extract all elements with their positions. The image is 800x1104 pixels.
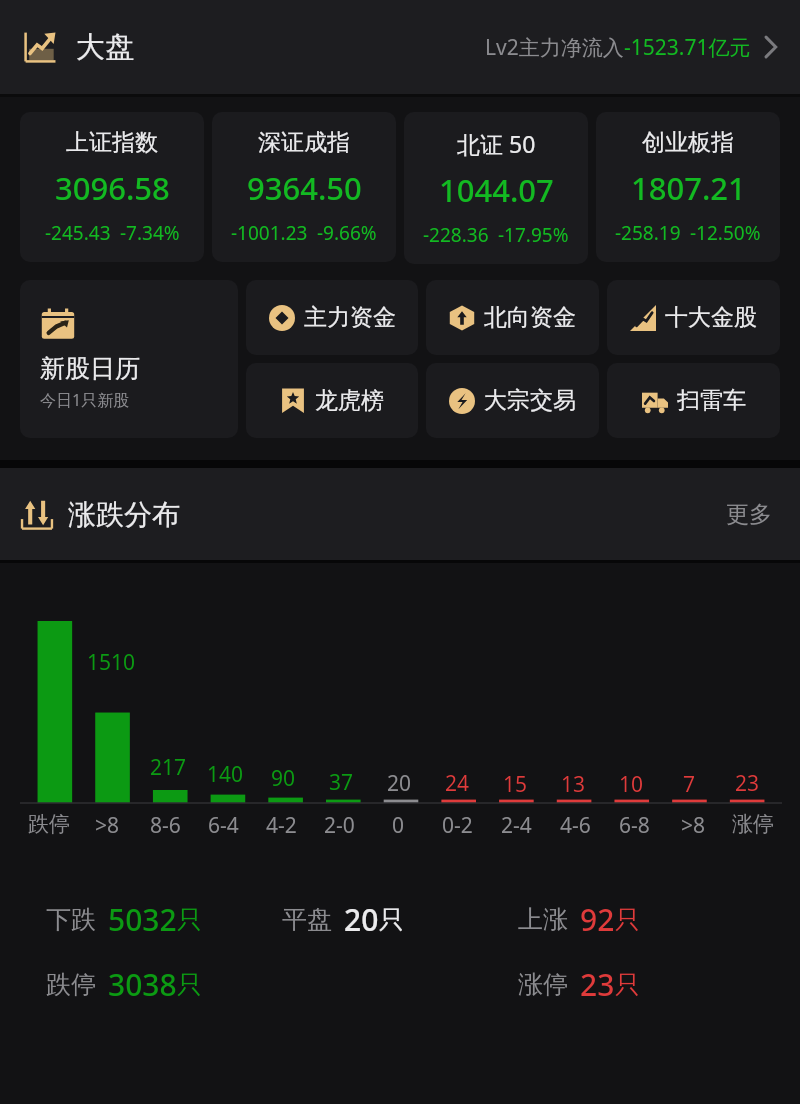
button[interactable]: 更多 bbox=[718, 492, 780, 537]
staticText: -1523.71亿元 bbox=[624, 33, 751, 62]
button[interactable]: Top ten gold stocks bbox=[607, 280, 780, 355]
staticText: 龙虎榜 bbox=[315, 386, 384, 415]
staticText: 平盘 bbox=[282, 904, 332, 935]
staticText: 涨停 bbox=[732, 811, 774, 837]
other: Northbound funds bbox=[449, 305, 475, 331]
staticText: -228.36 bbox=[423, 222, 489, 248]
staticText: 217 bbox=[150, 753, 187, 782]
other: Mine sweeper truck bbox=[642, 388, 668, 414]
button[interactable]: 创业板指 bbox=[596, 112, 780, 262]
staticText: 5032 bbox=[108, 899, 177, 940]
staticText: 大宗交易 bbox=[484, 386, 576, 415]
button[interactable]: 深证成指 bbox=[212, 112, 396, 262]
staticText: 更多 bbox=[726, 500, 772, 529]
staticText: 涨停 bbox=[518, 969, 568, 1000]
staticText: 0-2 bbox=[442, 811, 473, 840]
button[interactable]: Northbound funds bbox=[426, 280, 599, 355]
staticText: 7 bbox=[683, 770, 696, 799]
staticText: 上涨 bbox=[518, 904, 568, 935]
staticText: 140 bbox=[207, 760, 244, 789]
staticText: 20 bbox=[387, 769, 412, 798]
staticText: >8 bbox=[95, 811, 120, 840]
button[interactable]: Main funds bbox=[246, 280, 418, 355]
button[interactable]: Dragon tiger list bbox=[246, 363, 418, 438]
staticText: >8 bbox=[681, 811, 706, 840]
staticText: 4-2 bbox=[266, 811, 297, 840]
staticText: 15 bbox=[503, 770, 528, 799]
staticText: 1807.21 bbox=[631, 167, 746, 209]
staticText: -1001.23 bbox=[231, 220, 308, 246]
staticText: 3038 bbox=[108, 964, 177, 1005]
staticText: 92 bbox=[580, 899, 615, 940]
staticText: 20 bbox=[344, 899, 379, 940]
staticText: 23 bbox=[580, 964, 615, 1005]
staticText: 只 bbox=[379, 904, 404, 935]
button[interactable]: Market bbox=[0, 0, 800, 94]
staticText: 4-6 bbox=[560, 811, 591, 840]
staticText: -12.50% bbox=[690, 220, 761, 246]
button[interactable]: Up down distribution bbox=[20, 491, 180, 538]
staticText: 13 bbox=[561, 770, 586, 799]
staticText: 2-4 bbox=[501, 811, 532, 840]
staticText: 下跌 bbox=[46, 904, 96, 935]
staticText: 涨跌分布 bbox=[68, 497, 180, 532]
staticText: -17.95% bbox=[498, 222, 569, 248]
button[interactable]: Block trades bbox=[426, 363, 599, 438]
staticText: 上证指数 bbox=[66, 128, 158, 157]
staticText: -9.66% bbox=[317, 220, 377, 246]
other: Dragon tiger list bbox=[280, 388, 306, 414]
staticText: 大盘 bbox=[76, 29, 134, 66]
staticText: Lv2主力净流入 bbox=[485, 33, 624, 62]
staticText: 只 bbox=[615, 969, 640, 1000]
other: More bbox=[763, 34, 778, 60]
other: Market bbox=[22, 29, 58, 65]
staticText: 新股日历 bbox=[40, 353, 140, 384]
staticText: 37 bbox=[329, 768, 354, 797]
staticText: 1044.07 bbox=[439, 169, 554, 211]
button[interactable]: New stock calendar bbox=[20, 280, 238, 438]
staticText: -245.43 bbox=[45, 220, 111, 246]
staticText: 23 bbox=[735, 769, 760, 798]
staticText: 24 bbox=[445, 769, 470, 798]
staticText: 6-8 bbox=[619, 811, 650, 840]
other: Block trades bbox=[449, 388, 475, 414]
other: New stock calendar bbox=[40, 307, 76, 343]
button[interactable]: Mine sweeper truck bbox=[607, 363, 780, 438]
staticText: 2-0 bbox=[324, 811, 355, 840]
staticText: 8-6 bbox=[150, 811, 181, 840]
staticText: 90 bbox=[271, 764, 296, 793]
staticText: 只 bbox=[177, 904, 202, 935]
staticText: 主力资金 bbox=[304, 303, 396, 332]
staticText: 0 bbox=[392, 811, 405, 840]
other: Top ten gold stocks bbox=[630, 305, 656, 331]
button[interactable]: 上证指数 bbox=[20, 112, 204, 262]
button[interactable]: 北证 50 bbox=[404, 112, 588, 264]
staticText: 跌停 bbox=[28, 811, 70, 837]
other: Main funds bbox=[269, 305, 295, 331]
staticText: 北向资金 bbox=[484, 303, 576, 332]
staticText: -258.19 bbox=[615, 220, 681, 246]
staticText: 北证 50 bbox=[457, 128, 536, 159]
staticText: 只 bbox=[177, 969, 202, 1000]
staticText: 今日1只新股 bbox=[40, 389, 130, 411]
staticText: 十大金股 bbox=[665, 303, 757, 332]
staticText: 创业板指 bbox=[642, 128, 734, 157]
staticText: 6-4 bbox=[208, 811, 239, 840]
staticText: 跌停 bbox=[46, 969, 96, 1000]
staticText: 3096.58 bbox=[55, 167, 170, 209]
staticText: 10 bbox=[619, 770, 644, 799]
staticText: 只 bbox=[615, 904, 640, 935]
staticText: 1510 bbox=[87, 648, 136, 677]
other: Up down distribution bbox=[20, 498, 54, 532]
staticText: 深证成指 bbox=[258, 128, 350, 157]
staticText: 9364.50 bbox=[247, 167, 362, 209]
staticText: -7.34% bbox=[120, 220, 180, 246]
staticText: 扫雷车 bbox=[677, 386, 746, 415]
